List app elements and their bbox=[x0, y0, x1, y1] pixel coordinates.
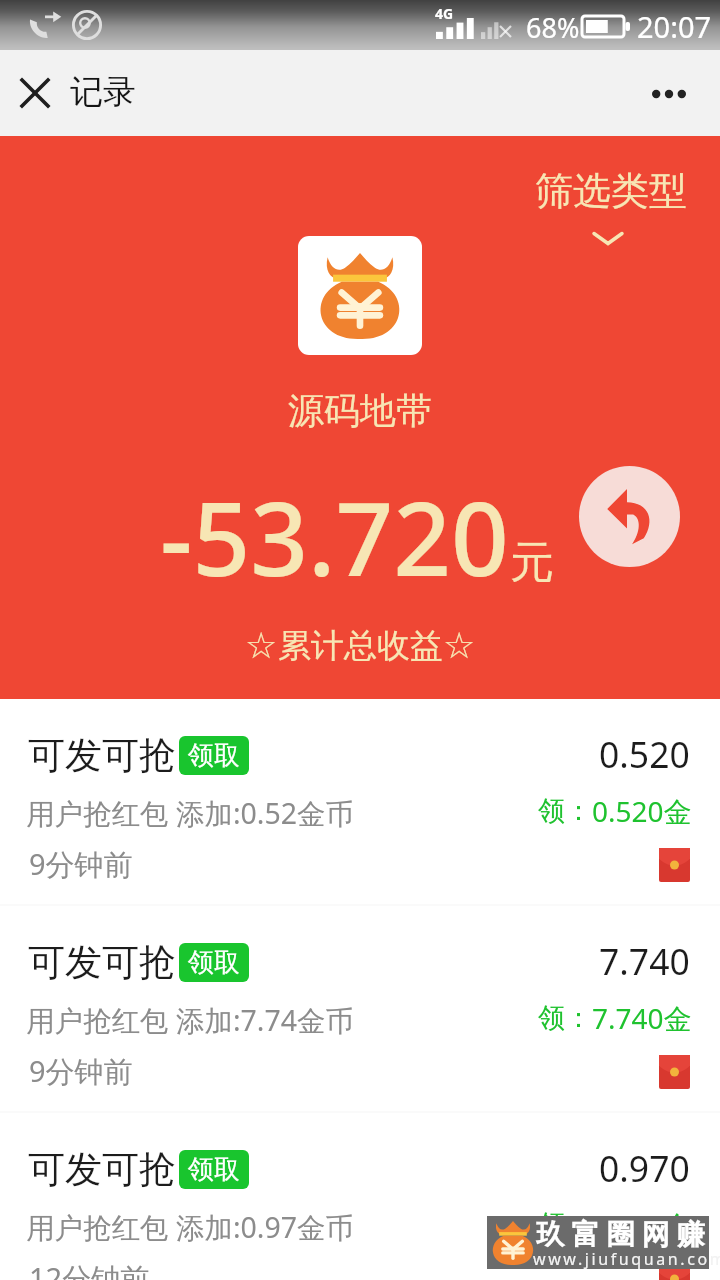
staticText: 领取 bbox=[188, 946, 240, 979]
staticText: 4G bbox=[435, 4, 454, 23]
staticText: 玖富圈网赚 bbox=[533, 1217, 708, 1252]
staticText: 领： bbox=[538, 794, 592, 828]
staticText: 9分钟前 bbox=[29, 1051, 133, 1091]
staticText: 可发可抢 bbox=[28, 732, 176, 779]
staticText: 元 bbox=[510, 535, 554, 590]
button[interactable]: 可发可抢 bbox=[0, 699, 720, 906]
button[interactable]: More options bbox=[634, 50, 720, 136]
staticText: ☆ bbox=[245, 625, 278, 667]
other: Call forwarding bbox=[28, 8, 62, 42]
other: Do not disturb bbox=[70, 8, 104, 42]
staticText: 0.520 bbox=[599, 730, 690, 778]
staticText: 68% bbox=[526, 9, 580, 46]
staticText: 筛选类型 bbox=[535, 167, 687, 215]
staticText: 用户抢红包 添加:0.52金币 bbox=[26, 794, 355, 833]
staticText: 可发可抢 bbox=[28, 1146, 176, 1193]
button[interactable]: Close bbox=[0, 58, 70, 128]
staticText: -53.720 bbox=[160, 468, 509, 606]
staticText: 累计总收益 bbox=[278, 625, 443, 667]
staticText: 7.740 bbox=[599, 937, 690, 985]
button[interactable]: 可发可抢 bbox=[0, 906, 720, 1113]
staticText: 领取 bbox=[188, 739, 240, 772]
button[interactable]: Money bag bbox=[298, 236, 422, 355]
staticText: 用户抢红包 添加:0.97金币 bbox=[26, 1208, 355, 1247]
staticText: 12分钟前 bbox=[29, 1258, 150, 1280]
staticText: 源码地带 bbox=[288, 388, 432, 433]
staticText: ☆ bbox=[443, 625, 476, 667]
staticText: www.jiufuquan.com bbox=[533, 1248, 720, 1270]
button[interactable]: 筛选类型 bbox=[520, 156, 690, 281]
staticText: 领取 bbox=[188, 1153, 240, 1186]
staticText: 记录 bbox=[70, 71, 136, 113]
button[interactable]: 可发可抢 bbox=[0, 1113, 720, 1280]
staticText: 可发可抢 bbox=[28, 939, 176, 986]
button[interactable]: Undo bbox=[579, 466, 680, 567]
staticText: 领： bbox=[538, 1001, 592, 1035]
staticText: 领： bbox=[538, 1208, 592, 1242]
staticText: 用户抢红包 添加:7.74金币 bbox=[26, 1001, 355, 1040]
staticText: 20:07 bbox=[637, 7, 712, 46]
staticText: 9分钟前 bbox=[29, 844, 133, 884]
staticText: 0.970金 bbox=[592, 1206, 692, 1244]
other: No SIM bbox=[500, 26, 511, 37]
staticText: 0.970 bbox=[599, 1144, 690, 1192]
staticText: 0.520金 bbox=[592, 792, 692, 830]
staticText: 7.740金 bbox=[592, 999, 692, 1037]
